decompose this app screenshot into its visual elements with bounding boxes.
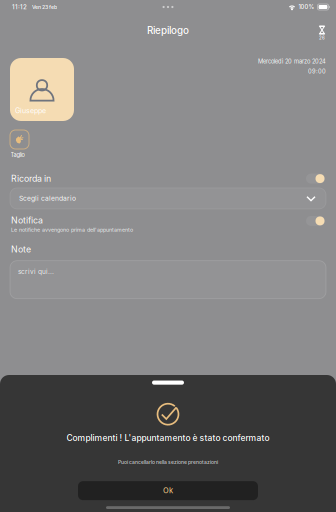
button[interactable]: Ok — [78, 481, 258, 500]
staticText: Scegli calendario — [19, 194, 76, 202]
button[interactable]: Notifica — [306, 216, 325, 226]
staticText: Riepilogo — [147, 24, 189, 36]
button[interactable]: Cronologia — [315, 24, 329, 42]
staticText: Notifica — [11, 215, 43, 225]
staticText: Le notifiche avvengono prima dell'appunt… — [11, 227, 133, 233]
button[interactable]: Ricorda in — [306, 174, 325, 184]
button[interactable]: scrivi qui... — [10, 261, 326, 299]
staticText: Complimenti ! L'appuntamento è stato con… — [66, 433, 269, 443]
staticText: Giuseppe — [15, 106, 46, 115]
button[interactable]: Scegli calendario — [10, 188, 326, 209]
staticText: Note — [11, 244, 31, 255]
staticText: scrivi qui... — [18, 268, 54, 276]
staticText: Mercoledì 20 marzo 2024 — [258, 58, 326, 65]
staticText: 26 — [319, 35, 325, 40]
button[interactable]: Taglio — [10, 121, 29, 158]
staticText: 100% — [298, 3, 314, 10]
staticText: Puoi cancellarlo nella sezione prenotazi… — [118, 459, 218, 465]
button[interactable]: Giuseppe — [10, 58, 74, 121]
staticText: Ricorda in — [11, 173, 51, 184]
staticText: 11:12 — [12, 3, 27, 11]
staticText: 09:00 — [308, 68, 326, 75]
staticText: Ok — [163, 486, 173, 495]
staticText: Taglio — [10, 151, 24, 158]
staticText: Ven 23 feb — [32, 4, 57, 10]
